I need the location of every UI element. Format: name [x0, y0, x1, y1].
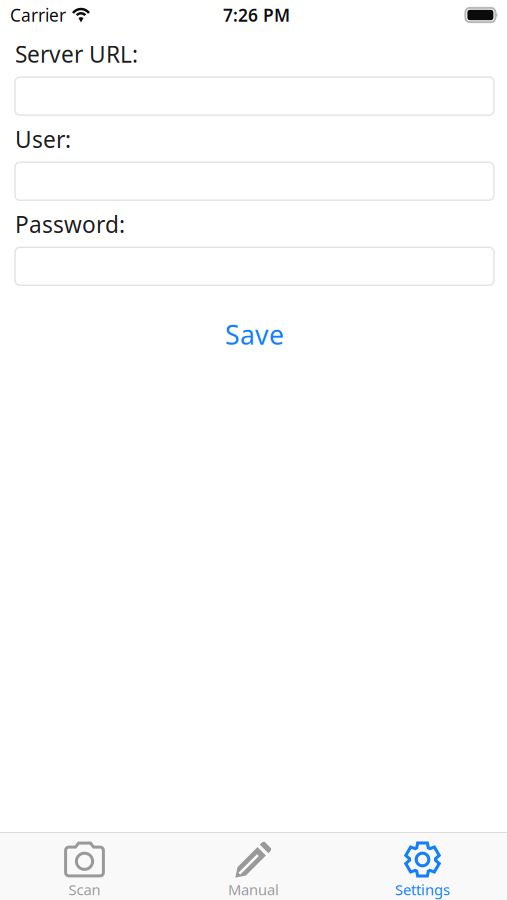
staticText: Settings: [395, 880, 450, 899]
staticText: Save: [225, 317, 284, 352]
staticText: User:: [15, 124, 71, 154]
button[interactable]: Manual: [169, 833, 338, 900]
staticText: Password:: [15, 209, 125, 239]
button[interactable]: User:: [15, 162, 494, 200]
button[interactable]: Password:: [15, 247, 494, 285]
staticText: Scan: [68, 880, 100, 899]
button[interactable]: Save: [15, 312, 494, 356]
button[interactable]: Settings: [338, 833, 507, 900]
staticText: 7:26 PM: [223, 3, 290, 26]
staticText: Manual: [228, 880, 279, 899]
staticText: Server URL:: [15, 39, 138, 69]
button[interactable]: Server URL:: [15, 77, 494, 115]
button[interactable]: Scan: [0, 833, 169, 900]
staticText: Carrier: [10, 3, 66, 26]
